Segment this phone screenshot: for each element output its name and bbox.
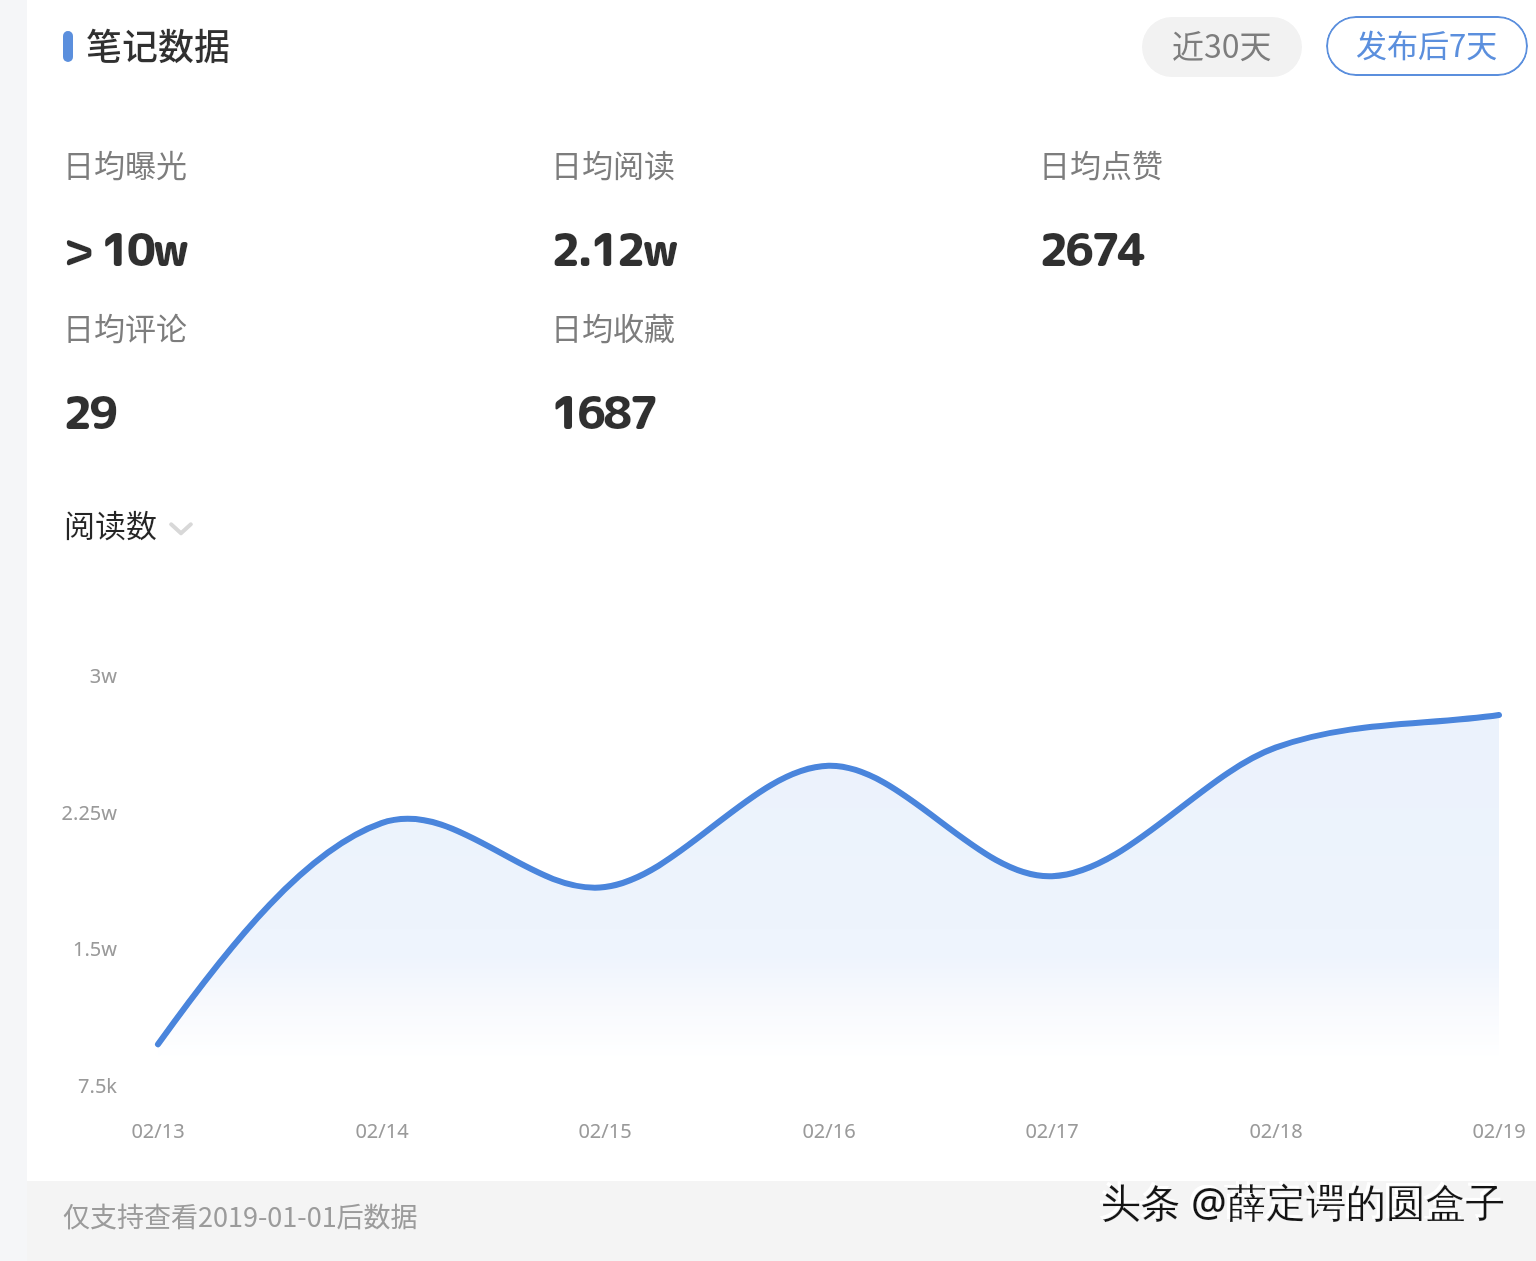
staticText: 日均阅读 <box>551 141 675 186</box>
staticText: 3w <box>17 662 117 689</box>
staticText: 02/15 <box>535 1117 675 1144</box>
staticText: 02/14 <box>312 1117 452 1144</box>
staticText: 阅读数 <box>64 501 157 546</box>
staticText: 29 <box>63 381 116 444</box>
staticText: 发布后7天 <box>1356 21 1498 66</box>
staticText: 头条 @薛定谔的圆盒子 <box>1101 1174 1506 1228</box>
staticText: 1.5w <box>17 935 117 962</box>
button[interactable]: 阅读数 选择指标 <box>64 501 193 546</box>
staticText: 日均曝光 <box>63 141 187 186</box>
staticText: 2.12w <box>551 218 676 281</box>
staticText: 近30天 <box>1172 21 1272 67</box>
staticText: 7.5k <box>17 1072 117 1099</box>
staticText: 日均点赞 <box>1039 141 1163 186</box>
staticText: 1687 <box>551 381 656 444</box>
button[interactable]: 发布后7天 <box>1326 16 1528 76</box>
staticText: 头条 @薛定谔的圆盒子 <box>1098 1171 1503 1225</box>
staticText: 2674 <box>1039 218 1144 281</box>
staticText: 日均评论 <box>63 304 187 349</box>
staticText: 日均收藏 <box>551 304 675 349</box>
staticText: 02/18 <box>1206 1117 1346 1144</box>
staticText: 笔记数据 <box>86 18 231 70</box>
staticText: 02/19 <box>1429 1117 1536 1144</box>
button[interactable]: 近30天 <box>1142 17 1302 77</box>
staticText: 02/13 <box>88 1117 228 1144</box>
staticText: 02/16 <box>759 1117 899 1144</box>
staticText: 仅支持查看2019-01-01后数据 <box>63 1196 418 1235</box>
staticText: 02/17 <box>982 1117 1122 1144</box>
staticText: 2.25w <box>17 799 117 826</box>
staticText: > 10w <box>63 218 186 281</box>
